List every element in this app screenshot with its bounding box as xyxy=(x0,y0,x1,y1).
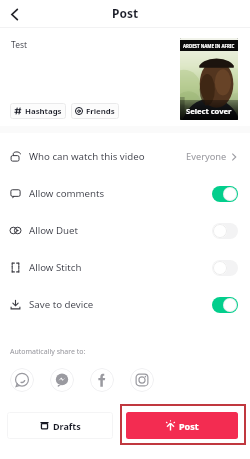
button[interactable]: Hashtags xyxy=(10,103,66,119)
button[interactable]: Friends xyxy=(71,103,119,119)
staticText: Post xyxy=(179,420,199,432)
button[interactable]: Back xyxy=(3,3,25,25)
button[interactable]: On xyxy=(212,297,238,313)
staticText: Automatically share to: xyxy=(10,347,86,357)
button[interactable]: Instagram xyxy=(130,368,154,392)
staticText: Allow comments xyxy=(29,187,105,200)
staticText: Post xyxy=(112,5,139,21)
staticText: Drafts xyxy=(53,420,81,432)
staticText: ARDEST NAME IN AFRIC xyxy=(183,43,235,49)
staticText: Test xyxy=(11,39,28,51)
button[interactable]: Off xyxy=(212,260,238,276)
button[interactable]: Save to device xyxy=(0,286,250,323)
button[interactable]: WhatsApp xyxy=(10,368,34,392)
button[interactable]: Facebook xyxy=(90,368,114,392)
staticText: Everyone xyxy=(186,150,227,163)
staticText: Allow Stitch xyxy=(29,261,82,274)
staticText: Friends xyxy=(86,106,115,117)
staticText: Who can watch this video xyxy=(29,150,145,163)
staticText: Hashtags xyxy=(25,106,62,117)
staticText: Allow Duet xyxy=(29,224,79,237)
button[interactable]: On xyxy=(212,186,238,202)
button[interactable]: Select cover xyxy=(180,38,238,120)
button[interactable]: Allow comments xyxy=(0,175,250,212)
button[interactable]: Post xyxy=(126,412,238,439)
button[interactable]: Who can watch this video xyxy=(0,138,250,175)
button[interactable]: Off xyxy=(212,223,238,239)
button[interactable]: Allow Stitch xyxy=(0,249,250,286)
staticText: Save to device xyxy=(29,298,94,311)
button[interactable]: Allow Duet xyxy=(0,212,250,249)
button[interactable]: Messenger xyxy=(50,368,74,392)
button[interactable]: Drafts xyxy=(7,412,113,439)
staticText: Select cover xyxy=(186,106,232,116)
